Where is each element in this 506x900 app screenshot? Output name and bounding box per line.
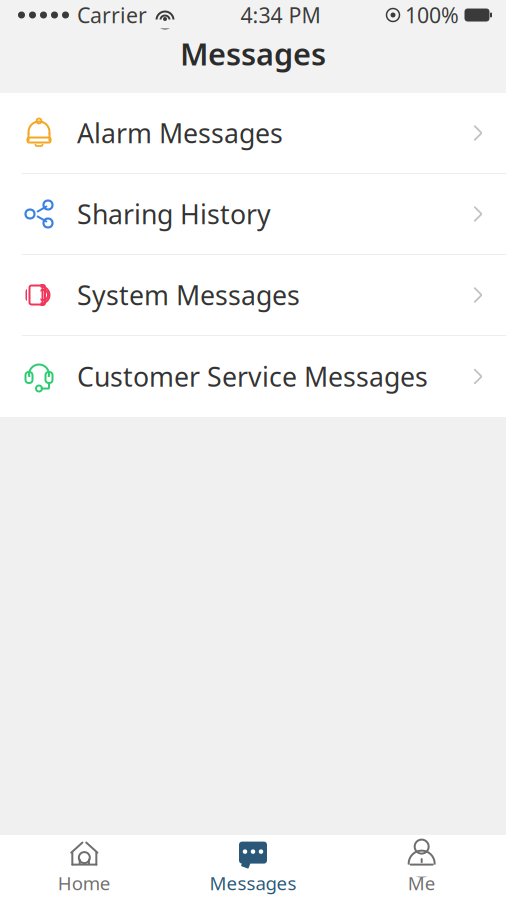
staticText: Me <box>408 871 436 895</box>
staticText: Messages <box>209 871 296 895</box>
button[interactable]: Me <box>337 835 506 900</box>
button[interactable]: Sharing History <box>0 174 506 255</box>
button[interactable]: Home <box>0 835 169 900</box>
staticText: Sharing History <box>77 196 271 232</box>
staticText: 4:34 PM <box>240 1 320 29</box>
button[interactable]: Messages <box>169 835 337 900</box>
button[interactable]: System Messages <box>0 255 506 336</box>
staticText: Carrier <box>77 1 147 29</box>
staticText: Alarm Messages <box>77 115 283 151</box>
button[interactable]: Customer Service Messages <box>0 336 506 417</box>
staticText: Messages <box>180 33 326 74</box>
staticText: Home <box>58 871 111 895</box>
staticText: 100% <box>405 1 459 29</box>
staticText: System Messages <box>77 277 300 313</box>
button[interactable]: Alarm Messages <box>0 93 506 174</box>
staticText: Customer Service Messages <box>77 359 428 394</box>
